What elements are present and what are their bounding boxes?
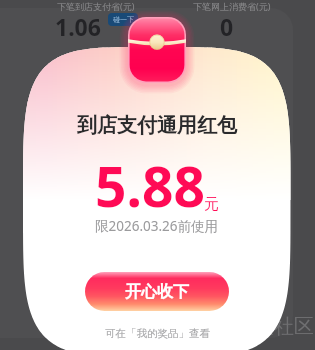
staticText: 开心收下 — [125, 282, 189, 302]
staticText: 可在「我的奖品」查看 — [105, 327, 210, 340]
button[interactable]: 碰一下 — [108, 13, 138, 26]
staticText: 5.88 — [95, 148, 205, 223]
button[interactable]: 开心收下 — [85, 272, 229, 311]
staticText: 1.06 — [55, 11, 101, 42]
staticText: 碰一下 — [113, 15, 134, 24]
staticText: 下笔到店支付省(元) — [57, 0, 135, 12]
staticText: 元 — [204, 195, 219, 214]
staticText: 下笔网上消费省(元) — [193, 0, 271, 12]
staticText: 到店支付通用红包 — [77, 113, 237, 138]
staticText: 0 — [220, 11, 234, 42]
staticText: 限2026.03.26前使用 — [95, 217, 219, 235]
staticText: 卡农社区 — [234, 314, 314, 339]
other: Red packet — [121, 14, 193, 94]
